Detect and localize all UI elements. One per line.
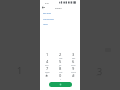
- button[interactable]: 4: [40, 59, 54, 66]
- staticText: DEF: [72, 57, 76, 59]
- staticText: 3: [72, 52, 75, 57]
- staticText: 9:41: [45, 2, 50, 5]
- button[interactable]: 8: [54, 66, 67, 73]
- staticText: Dialer: [55, 6, 62, 9]
- staticText: 0: [59, 73, 62, 78]
- staticText: Help: [43, 23, 48, 26]
- button[interactable]: ∗: [40, 73, 54, 80]
- staticText: 9: [72, 66, 75, 71]
- button[interactable]: 9: [67, 66, 80, 73]
- staticText: 2: [59, 52, 62, 57]
- staticText: 7: [46, 66, 49, 71]
- button[interactable]: Help: [43, 23, 48, 26]
- staticText: #: [72, 73, 75, 78]
- staticText: Voicemails: [43, 18, 54, 21]
- button[interactable]: Recents: [43, 12, 52, 15]
- staticText: GHI: [45, 64, 49, 66]
- button[interactable]: Voicemails: [43, 18, 54, 21]
- button[interactable]: 2: [54, 52, 67, 59]
- staticText: Recents: [43, 12, 52, 15]
- staticText: WXYZ: [71, 71, 76, 73]
- staticText: 1: [17, 64, 23, 76]
- button[interactable]: 0: [54, 73, 67, 80]
- staticText: +: [60, 78, 62, 80]
- staticText: TUV: [59, 71, 63, 73]
- button[interactable]: 1: [40, 52, 54, 59]
- staticText: ABC: [59, 57, 63, 59]
- button[interactable]: 3: [67, 52, 80, 59]
- staticText: ∗: [45, 73, 49, 78]
- staticText: PQRS: [45, 71, 50, 73]
- button[interactable]: 6: [67, 59, 80, 66]
- staticText: MNO: [71, 64, 76, 66]
- staticText: 8: [59, 66, 62, 71]
- staticText: 5: [59, 59, 62, 64]
- staticText: 2022: [96, 74, 102, 77]
- staticText: 1: [46, 52, 49, 57]
- staticText: 6: [72, 59, 75, 64]
- button[interactable]: Call: [49, 82, 72, 87]
- button[interactable]: #: [67, 73, 80, 80]
- staticText: 4: [46, 59, 49, 64]
- button[interactable]: 5: [54, 59, 67, 66]
- button[interactable]: 7: [40, 66, 54, 73]
- staticText: 3: [97, 65, 103, 77]
- button[interactable]: Back: [41, 5, 46, 10]
- staticText: JKL: [59, 64, 62, 66]
